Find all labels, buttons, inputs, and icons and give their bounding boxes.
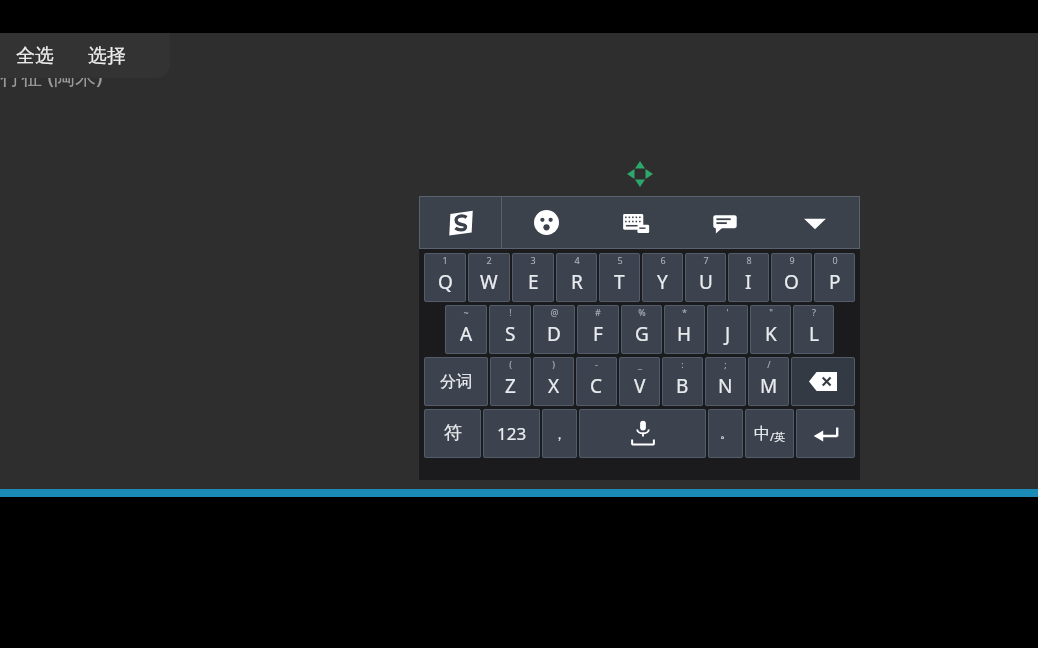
- button[interactable]: 分词: [424, 357, 488, 406]
- button[interactable]: Messages: [680, 196, 770, 249]
- staticText: M: [760, 373, 778, 399]
- staticText: H: [677, 321, 692, 347]
- staticText: 8: [746, 254, 752, 266]
- button[interactable]: 。: [708, 409, 743, 458]
- button[interactable]: !: [489, 305, 531, 354]
- button[interactable]: ': [707, 305, 748, 354]
- staticText: 0: [832, 254, 838, 266]
- button[interactable]: 9: [771, 253, 812, 302]
- button[interactable]: Sogou input: [419, 196, 502, 249]
- staticText: J: [725, 321, 731, 347]
- staticText: 1: [442, 254, 448, 266]
- staticText: V: [634, 373, 646, 399]
- staticText: G: [635, 321, 649, 347]
- button[interactable]: 2: [468, 253, 510, 302]
- button[interactable]: ": [750, 305, 791, 354]
- staticText: -: [595, 358, 598, 370]
- button[interactable]: 全选: [16, 44, 54, 68]
- button[interactable]: %: [621, 305, 662, 354]
- staticText: %: [638, 306, 646, 318]
- staticText: 7: [703, 254, 709, 266]
- staticText: Y: [657, 269, 668, 295]
- staticText: W: [480, 269, 498, 295]
- staticText: 123: [497, 422, 527, 445]
- staticText: 5: [617, 254, 623, 266]
- button[interactable]: Move keyboard: [625, 159, 655, 189]
- button[interactable]: 8: [728, 253, 769, 302]
- staticText: ): [552, 358, 555, 370]
- staticText: @: [550, 306, 559, 318]
- button[interactable]: ?: [793, 305, 834, 354]
- staticText: F: [593, 321, 603, 347]
- staticText: *: [682, 306, 687, 318]
- button[interactable]: Space, voice input: [579, 409, 706, 458]
- staticText: Z: [505, 373, 516, 399]
- staticText: I: [745, 269, 752, 295]
- button[interactable]: 6: [642, 253, 683, 302]
- button[interactable]: Emoji: [502, 196, 591, 249]
- button[interactable]: (: [490, 357, 531, 406]
- button[interactable]: 7: [685, 253, 726, 302]
- staticText: L: [809, 321, 819, 347]
- button[interactable]: Backspace: [791, 357, 855, 406]
- staticText: #: [595, 306, 601, 318]
- staticText: 6: [660, 254, 666, 266]
- button[interactable]: Enter: [796, 409, 855, 458]
- button[interactable]: Keyboard layout: [591, 196, 680, 249]
- staticText: P: [829, 269, 841, 295]
- button[interactable]: 4: [556, 253, 597, 302]
- staticText: 符: [444, 422, 462, 445]
- staticText: :: [681, 358, 684, 370]
- button[interactable]: ;: [705, 357, 746, 406]
- staticText: 分词: [440, 372, 472, 392]
- button[interactable]: #: [577, 305, 619, 354]
- staticText: 全选: [16, 44, 54, 68]
- staticText: X: [548, 373, 560, 399]
- staticText: !: [509, 306, 512, 318]
- staticText: D: [547, 321, 561, 347]
- staticText: ?: [812, 306, 816, 318]
- button[interactable]: *: [664, 305, 705, 354]
- button[interactable]: 3: [512, 253, 554, 302]
- staticText: /英: [770, 429, 786, 444]
- button[interactable]: 1: [424, 253, 466, 302]
- staticText: 3: [530, 254, 536, 266]
- staticText: E: [528, 269, 539, 295]
- staticText: N: [718, 373, 733, 399]
- button[interactable]: _: [619, 357, 660, 406]
- staticText: ，: [553, 426, 566, 442]
- staticText: 选择: [88, 44, 126, 68]
- button[interactable]: ，: [542, 409, 577, 458]
- button[interactable]: 0: [814, 253, 855, 302]
- button[interactable]: ~: [445, 305, 487, 354]
- staticText: A: [460, 321, 473, 347]
- button[interactable]: 符: [424, 409, 481, 458]
- staticText: 4: [574, 254, 580, 266]
- button[interactable]: 5: [599, 253, 640, 302]
- staticText: 行征 (陶米): [0, 62, 103, 91]
- staticText: 2: [486, 254, 492, 266]
- button[interactable]: :: [662, 357, 703, 406]
- staticText: S: [505, 321, 516, 347]
- button[interactable]: -: [576, 357, 617, 406]
- button[interactable]: 选择: [88, 44, 126, 68]
- staticText: 9: [789, 254, 795, 266]
- staticText: U: [699, 269, 713, 295]
- staticText: T: [614, 269, 625, 295]
- staticText: Q: [438, 269, 453, 295]
- staticText: 中: [754, 424, 770, 444]
- staticText: ;: [724, 358, 727, 370]
- staticText: (: [509, 358, 512, 370]
- staticText: ~: [463, 306, 469, 318]
- staticText: R: [571, 269, 583, 295]
- button[interactable]: Hide keyboard: [770, 196, 860, 249]
- staticText: C: [590, 373, 603, 399]
- button[interactable]: ): [533, 357, 574, 406]
- staticText: 。: [720, 426, 732, 441]
- button[interactable]: 中: [745, 409, 794, 458]
- staticText: O: [784, 269, 799, 295]
- button[interactable]: @: [533, 305, 575, 354]
- staticText: ': [726, 306, 729, 318]
- button[interactable]: /: [748, 357, 789, 406]
- button[interactable]: 123: [483, 409, 540, 458]
